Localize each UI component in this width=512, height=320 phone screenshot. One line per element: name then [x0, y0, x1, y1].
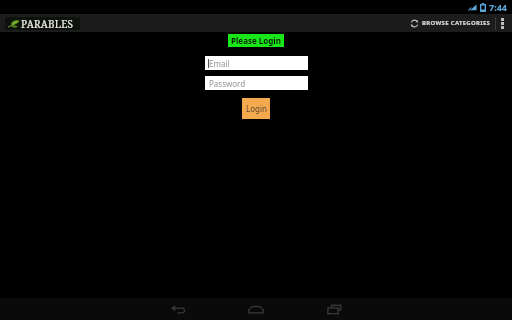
staticText: BROWSE CATEGORIES	[422, 19, 491, 27]
staticText: Email	[209, 58, 230, 69]
staticText: Password	[209, 78, 246, 89]
button[interactable]: BROWSE CATEGORIES	[406, 14, 495, 32]
button[interactable]: Home	[236, 298, 276, 320]
staticText: 7:44	[489, 1, 507, 13]
button[interactable]: More options	[496, 14, 509, 32]
staticText: PARABLES	[21, 17, 74, 30]
button[interactable]: Password	[205, 76, 308, 90]
button[interactable]: Back	[158, 298, 198, 320]
button[interactable]: Email	[205, 56, 308, 70]
staticText: Please Login	[231, 35, 281, 46]
button[interactable]: Login	[242, 98, 270, 119]
button[interactable]: Recent apps	[314, 298, 354, 320]
staticText: Login	[246, 103, 267, 114]
button[interactable]: PARABLES	[5, 17, 80, 30]
